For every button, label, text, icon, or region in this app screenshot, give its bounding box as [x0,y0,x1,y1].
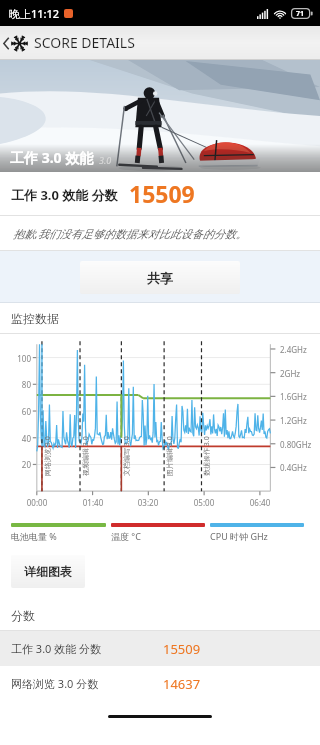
staticText: 1.2GHz [280,415,307,426]
staticText: SCORE DETAILS [34,33,135,52]
staticText: 抱歉,我们没有足够的数据来对比此设备的分数。 [13,226,247,241]
staticText: CPU 时钟 GHz [210,530,268,542]
staticText: 71 [296,9,305,19]
staticText: 100 [1,353,31,364]
staticText: 15509 [129,178,195,209]
staticText: 视频编辑 3.0 [81,436,91,476]
staticText: 温度 °C [111,530,141,542]
staticText: 共享 [147,270,173,286]
staticText: 00:00 [20,497,54,508]
staticText: 06:40 [243,497,277,508]
button[interactable]: 工作 3.0 效能 分数 [0,631,320,666]
staticText: 电池电量 % [11,530,57,542]
staticText: 3.0 [99,154,112,166]
staticText: 03:20 [131,497,165,508]
staticText: 1.6GHz [280,391,307,402]
button[interactable]: 共享 [80,261,240,294]
staticText: 2GHz [280,368,301,379]
staticText: 0.4GHz [280,462,307,473]
staticText: 网络浏览 3.0 [43,436,53,476]
staticText: 2.4GHz [280,344,307,355]
staticText: 40 [1,433,31,444]
staticText: 文档编写 3.0 [122,436,132,476]
staticText: 05:00 [187,497,221,508]
staticText: 工作 3.0 效能 分数 [11,186,118,204]
staticText: 工作 3.0 效能 分数 [11,641,102,656]
button[interactable]: Back to score details [0,33,143,53]
staticText: 60 [1,406,31,417]
staticText: 20 [1,459,31,470]
staticText: 0.80GHz [280,439,312,450]
staticText: 分数 [11,608,35,623]
staticText: 14637 [163,675,201,693]
staticText: 晚上11:12 [9,6,60,21]
staticText: 详细图表 [24,564,72,579]
staticText: 工作 3.0 效能 [10,148,94,167]
staticText: 80 [1,379,31,390]
staticText: 数据操作 3.0 [202,436,212,476]
staticText: 15509 [163,640,201,658]
button[interactable]: 详细图表 [11,555,85,588]
staticText: 图片编辑 3.0 [165,436,175,476]
staticText: 监控数据 [11,311,59,326]
button[interactable]: 网络浏览 3.0 分数 [0,666,320,701]
staticText: 01:40 [76,497,110,508]
staticText: 网络浏览 3.0 分数 [11,676,99,691]
